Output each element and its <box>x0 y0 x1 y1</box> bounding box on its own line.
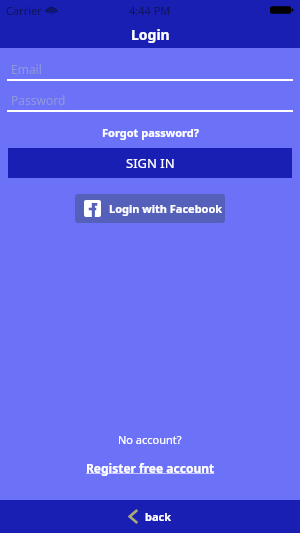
staticText: Register free account <box>86 460 215 476</box>
staticText: 4:44 PM <box>129 3 171 18</box>
staticText: back <box>145 509 172 524</box>
other: Back <box>129 509 138 524</box>
button[interactable]: Login with Facebook <box>75 194 225 223</box>
button[interactable]: Register free account <box>0 458 300 478</box>
staticText: Login with Facebook <box>109 201 223 216</box>
staticText: Forgot password? <box>102 125 199 140</box>
button[interactable]: SIGN IN <box>8 148 292 178</box>
staticText: Password <box>11 92 66 108</box>
button[interactable]: Password <box>0 90 300 112</box>
button[interactable]: Forgot password? <box>0 123 300 141</box>
staticText: Carrier <box>6 3 42 18</box>
button[interactable]: Email <box>0 59 300 81</box>
staticText: SIGN IN <box>126 154 175 172</box>
staticText: Email <box>11 61 42 77</box>
staticText: No account? <box>118 432 182 447</box>
button[interactable]: Back <box>119 500 182 533</box>
staticText: Login <box>131 25 170 44</box>
